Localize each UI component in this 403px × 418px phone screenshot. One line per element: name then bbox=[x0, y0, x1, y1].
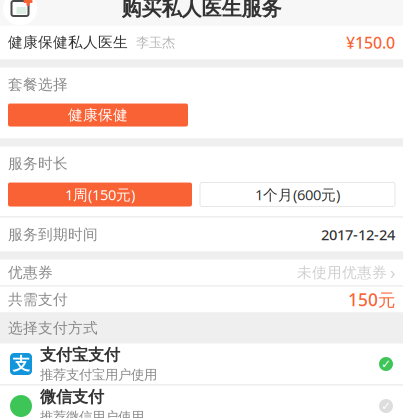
staticText: 选择支付方式 bbox=[8, 319, 98, 337]
staticText: 150元 bbox=[348, 288, 395, 311]
staticText: 支付宝支付 bbox=[40, 345, 120, 365]
staticText: 推荐微信用户使用 bbox=[40, 409, 144, 418]
button[interactable]: 健康保健 bbox=[8, 103, 188, 126]
button[interactable]: Add photo bbox=[0, 0, 40, 25]
staticText: 支 bbox=[12, 353, 29, 375]
staticText: ¥150.0 bbox=[346, 32, 395, 53]
staticText: 健康保健 bbox=[68, 106, 128, 124]
staticText: 健康保健私人医生 bbox=[8, 33, 128, 51]
staticText: ✓ bbox=[381, 399, 391, 413]
staticText: › bbox=[390, 261, 395, 284]
staticText: ✓ bbox=[381, 357, 391, 371]
staticText: 服务到期时间 bbox=[8, 225, 98, 243]
staticText: 未使用优惠券 bbox=[297, 263, 387, 281]
staticText: 1周(150元) bbox=[65, 185, 135, 204]
staticText: 套餐选择 bbox=[8, 75, 68, 93]
staticText: 优惠券 bbox=[8, 263, 53, 281]
staticText: 推荐支付宝用户使用 bbox=[40, 367, 157, 383]
staticText: 共需支付 bbox=[8, 290, 68, 308]
staticText: 购买私人医生服务 bbox=[121, 0, 281, 21]
button[interactable]: 优惠券 bbox=[0, 259, 403, 285]
button[interactable]: 微信支付 bbox=[0, 385, 403, 418]
staticText: 李玉杰 bbox=[128, 34, 175, 51]
staticText: 2017-12-24 bbox=[321, 225, 395, 244]
staticText: 微信支付 bbox=[40, 387, 104, 407]
staticText: 服务时长 bbox=[8, 154, 68, 172]
button[interactable]: 1个月(600元) bbox=[200, 182, 395, 206]
button[interactable]: 1周(150元) bbox=[8, 182, 192, 206]
button[interactable]: 支 bbox=[0, 343, 403, 384]
staticText: 1个月(600元) bbox=[255, 185, 340, 204]
